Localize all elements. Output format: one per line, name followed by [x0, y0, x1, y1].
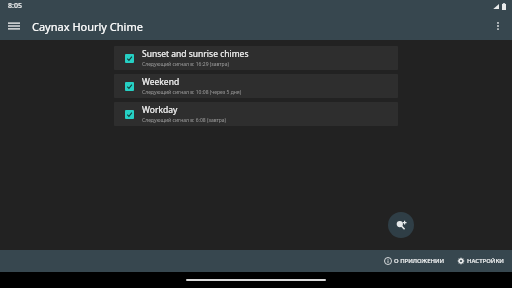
staticText: Следующий сигнал в: 6:08 (завтра) [142, 117, 227, 124]
staticText: Weekend [142, 76, 180, 88]
button[interactable]: Toggle Weekend [114, 74, 398, 98]
button[interactable]: Open navigation drawer [0, 12, 28, 40]
staticText: 8:05 [8, 1, 22, 11]
staticText: Workday [142, 104, 178, 116]
button[interactable]: Toggle Sunset and sunrise chimes [120, 49, 138, 67]
button[interactable]: Toggle Workday [120, 105, 138, 123]
staticText: Caynax Hourly Chime [32, 19, 143, 34]
staticText: Следующий сигнал в: 10:08 (через 5 дня) [142, 89, 242, 96]
button[interactable]: О ПРИЛОЖЕНИИ [380, 254, 449, 268]
button[interactable]: Toggle Weekend [120, 77, 138, 95]
staticText: О ПРИЛОЖЕНИИ [394, 257, 445, 265]
button[interactable]: Toggle Workday [114, 102, 398, 126]
staticText: Следующий сигнал в: 16:29 (завтра) [142, 61, 229, 68]
staticText: Sunset and sunrise chimes [142, 48, 249, 60]
button[interactable]: Toggle Sunset and sunrise chimes [114, 46, 398, 70]
button[interactable]: НАСТРОЙКИ [453, 254, 512, 268]
button[interactable]: Add chime [388, 212, 414, 238]
staticText: НАСТРОЙКИ [467, 257, 504, 265]
button[interactable]: More options [484, 12, 512, 40]
